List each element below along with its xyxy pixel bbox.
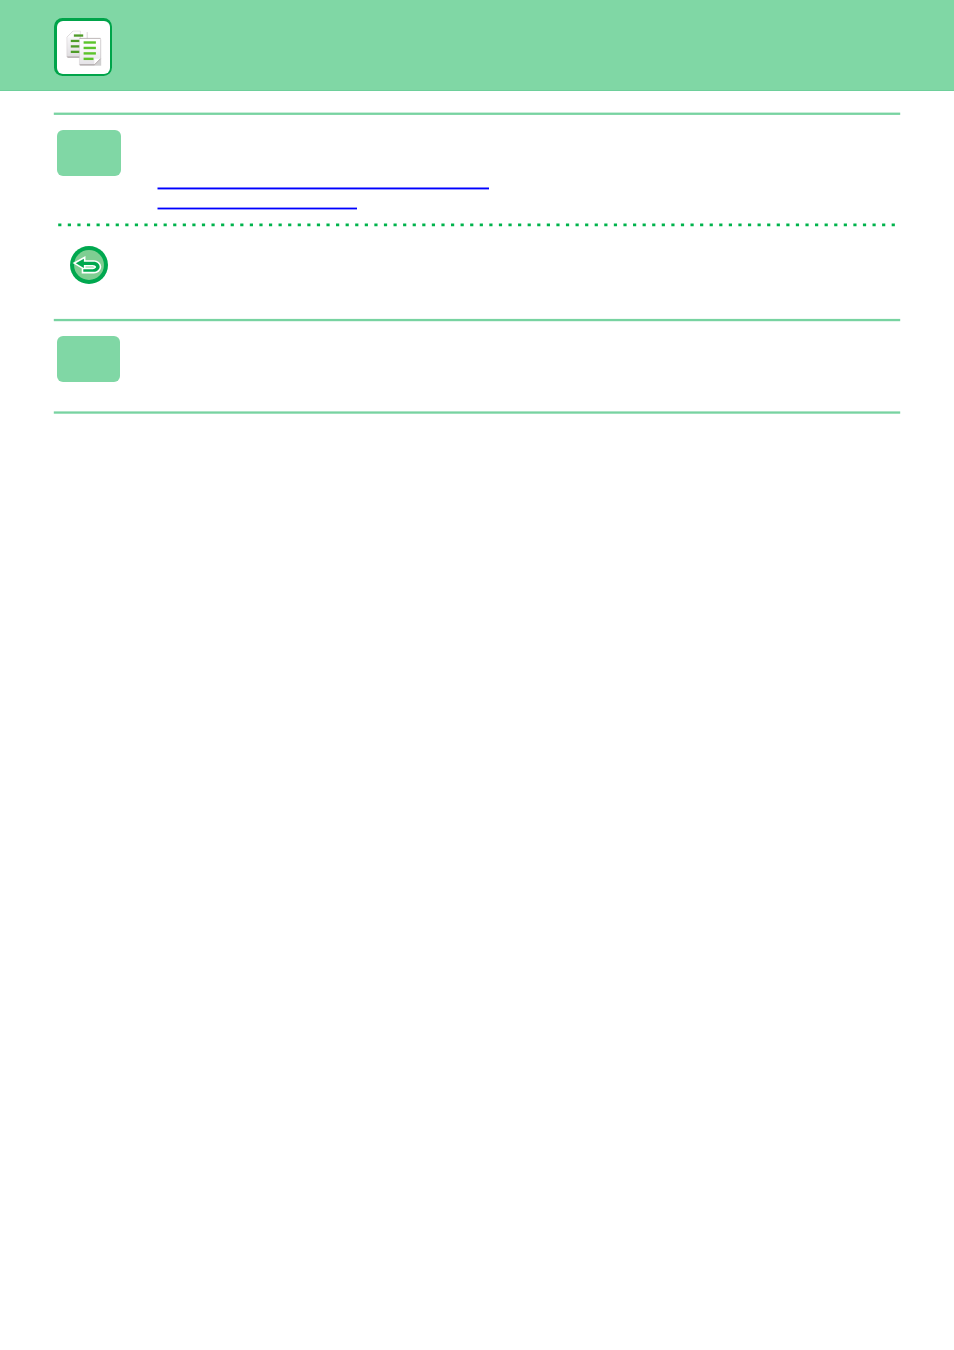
button[interactable]: Step 2 [57, 336, 120, 382]
button[interactable]: Copy [54, 18, 112, 76]
button[interactable]: Cancel [70, 246, 108, 284]
button[interactable]: Step 1 [57, 130, 121, 176]
